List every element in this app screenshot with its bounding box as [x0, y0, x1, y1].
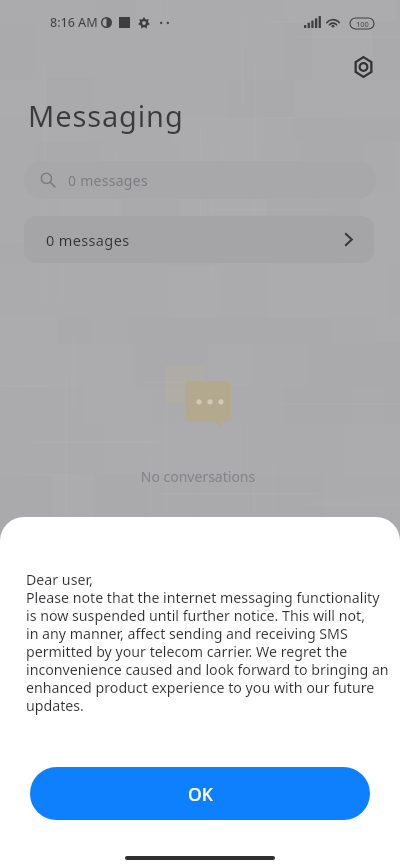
- button[interactable]: Settings: [343, 46, 384, 87]
- staticText: No conversations: [0, 467, 398, 486]
- button[interactable]: OK: [30, 767, 370, 820]
- staticText: OK: [188, 782, 213, 806]
- staticText: Dear user, Please note that the internet…: [26, 570, 389, 715]
- button[interactable]: 0 messages: [24, 161, 376, 199]
- staticText: 8:16 AM: [50, 14, 98, 31]
- staticText: 100: [356, 19, 369, 29]
- staticText: Messaging: [28, 96, 184, 135]
- staticText: 0 messages: [46, 230, 130, 250]
- staticText: 0 messages: [68, 171, 148, 190]
- button[interactable]: 0 messages: [24, 216, 374, 263]
